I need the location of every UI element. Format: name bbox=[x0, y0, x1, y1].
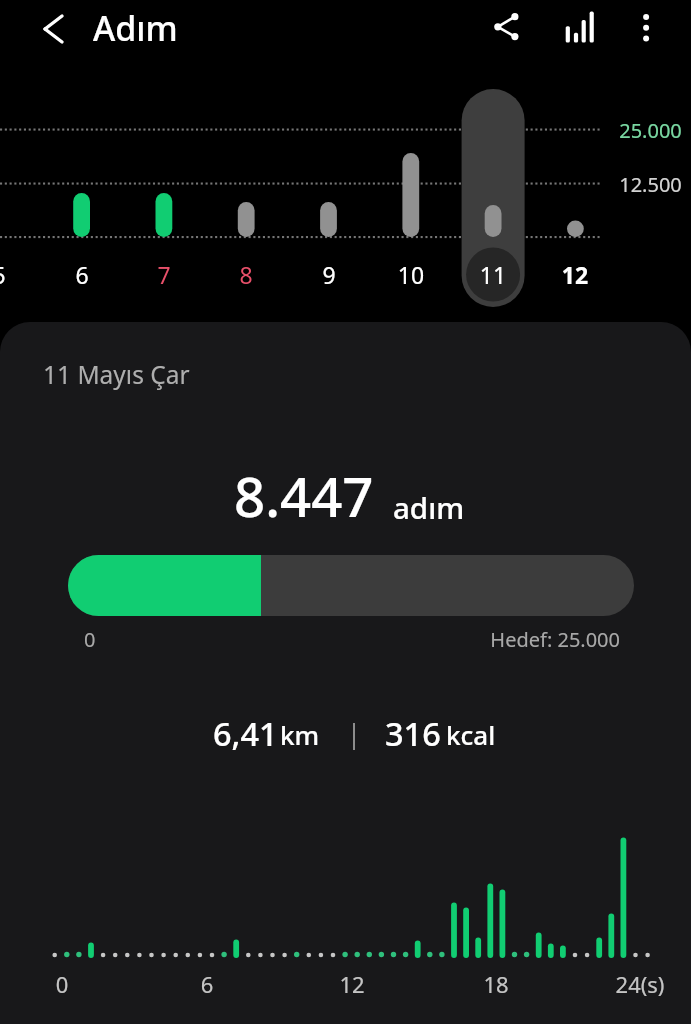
staticText: 11 Mayıs Çar bbox=[43, 358, 190, 391]
button[interactable]: Statistics bbox=[558, 6, 598, 46]
staticText: 12 bbox=[550, 259, 600, 290]
staticText: 0 bbox=[84, 626, 96, 653]
staticText: 12.500 bbox=[615, 171, 686, 198]
staticText: kcal bbox=[446, 717, 496, 752]
staticText: 6 bbox=[57, 259, 107, 290]
staticText: 6,41 bbox=[213, 711, 278, 755]
staticText: 9 bbox=[304, 259, 354, 290]
staticText: Hedef: 25.000 bbox=[420, 626, 620, 653]
staticText: km bbox=[280, 717, 320, 752]
staticText: 10 bbox=[386, 259, 436, 290]
button[interactable]: Back bbox=[33, 9, 73, 49]
staticText: 18 bbox=[456, 969, 536, 999]
staticText: 5 bbox=[0, 259, 24, 290]
staticText: 11 bbox=[468, 259, 518, 290]
staticText: 6 bbox=[167, 969, 247, 999]
staticText: adım bbox=[393, 487, 465, 527]
staticText: 25.000 bbox=[615, 117, 686, 144]
staticText: 12 bbox=[312, 969, 392, 999]
button[interactable]: More options bbox=[626, 6, 666, 46]
button[interactable]: 11 Mayıs Çar bbox=[0, 322, 691, 1024]
staticText: 316 bbox=[385, 711, 441, 755]
staticText: Adım bbox=[93, 5, 178, 51]
staticText: 8 bbox=[221, 259, 271, 290]
staticText: 7 bbox=[139, 259, 189, 290]
button[interactable]: Share bbox=[486, 6, 526, 46]
staticText: 0 bbox=[22, 969, 102, 999]
staticText: 24(s) bbox=[600, 969, 680, 999]
staticText: 8.447 bbox=[234, 459, 374, 533]
